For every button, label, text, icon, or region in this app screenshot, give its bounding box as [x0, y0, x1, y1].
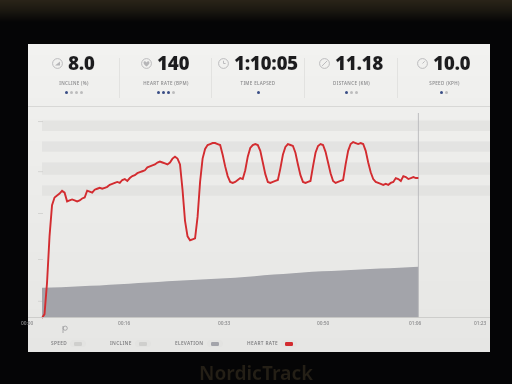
staticText: 1:10:05 [234, 50, 298, 76]
staticText: 00:00 [21, 320, 34, 327]
other: DISTANCE (KM) [319, 58, 330, 69]
staticText: HEART RATE [247, 340, 278, 347]
staticText: 11.18 [335, 50, 384, 76]
staticText: 01:23 [474, 320, 487, 327]
staticText: ELEVATION [175, 340, 204, 347]
staticText: INCLINE [110, 340, 132, 347]
staticText: DISTANCE (KM) [333, 80, 370, 86]
staticText: 00:33 [218, 320, 231, 327]
button[interactable]: ELEVATION [172, 338, 226, 349]
button[interactable]: INCLINE (%) [28, 50, 119, 106]
button[interactable]: HEART RATE (BPM) [120, 50, 211, 106]
other: SPEED (KPH) [417, 58, 428, 69]
staticText: NordicTrack [199, 360, 314, 384]
other: INCLINE (%) [52, 58, 63, 69]
button[interactable]: INCLINE [107, 338, 154, 349]
button[interactable]: SPEED [48, 338, 89, 349]
other: HEART RATE (BPM) [141, 58, 152, 69]
staticText: HEART RATE (BPM) [143, 80, 189, 86]
staticText: SPEED [51, 340, 67, 347]
staticText: 10.0 [433, 50, 471, 76]
staticText: TIME ELAPSED [240, 80, 276, 86]
staticText: SPEED (KPH) [429, 80, 460, 86]
other: TIME ELAPSED [218, 58, 229, 69]
button[interactable]: SPEED (KPH) [398, 50, 490, 106]
staticText: 00:50 [317, 320, 330, 327]
button[interactable]: TIME ELAPSED [212, 50, 304, 106]
staticText: 00:16 [118, 320, 131, 327]
button[interactable]: DISTANCE (KM) [305, 50, 397, 106]
staticText: 140 [157, 50, 190, 76]
staticText: INCLINE (%) [59, 80, 89, 86]
button[interactable]: HEART RATE [244, 338, 300, 349]
staticText: 8.0 [68, 50, 95, 76]
staticText: 01:06 [409, 320, 422, 327]
